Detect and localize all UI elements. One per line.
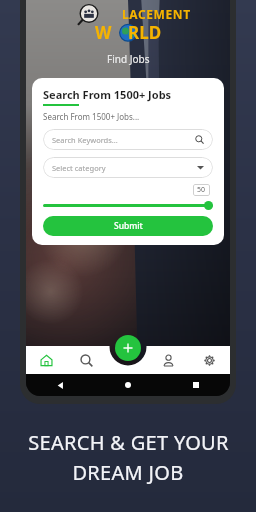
staticText: W	[95, 21, 112, 44]
staticText: LACEMENT	[122, 6, 191, 22]
staticText: Select category	[52, 163, 197, 173]
staticText: Search Keywords...	[52, 135, 195, 145]
button[interactable]: Back	[26, 374, 94, 396]
button[interactable]: Settings	[189, 346, 230, 374]
button[interactable]: Profile	[148, 346, 189, 374]
button[interactable]	[43, 200, 213, 210]
staticText: Search From 1500+ Jobs	[43, 87, 172, 102]
staticText: SEARCH & GET YOUR	[28, 429, 229, 456]
staticText: Search From 1500+ Jobs...	[43, 111, 140, 122]
button[interactable]: Recents	[162, 374, 230, 396]
staticText: DREAM JOB	[72, 459, 184, 486]
staticText: Find Jobs	[107, 52, 150, 66]
button[interactable]: Home	[94, 374, 162, 396]
staticText: RLD	[128, 21, 162, 44]
button[interactable]: Select category	[43, 157, 213, 178]
button[interactable]: Submit	[43, 216, 213, 236]
button[interactable]: Search Keywords...	[43, 129, 213, 150]
button[interactable]: Search	[66, 346, 107, 374]
button[interactable]: Add	[115, 335, 141, 361]
staticText: Submit	[114, 220, 143, 232]
staticText: 50	[197, 185, 206, 195]
button[interactable]: Home	[26, 346, 66, 374]
